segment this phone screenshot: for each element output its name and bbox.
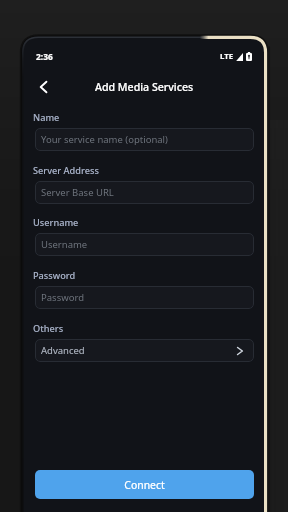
button[interactable]: Advanced	[35, 339, 254, 362]
staticText: 2:36	[36, 51, 53, 62]
button[interactable]: Password	[35, 286, 254, 309]
button[interactable]: Connect	[35, 470, 254, 499]
staticText: Connect	[124, 478, 165, 492]
button[interactable]: Username	[35, 233, 254, 256]
staticText: Username	[33, 216, 79, 229]
staticText: LTE	[220, 51, 234, 62]
staticText: Add Media Services	[95, 80, 194, 94]
staticText: Your service name (optional)	[41, 133, 168, 146]
button[interactable]: Server Base URL	[35, 181, 254, 204]
staticText: Password	[41, 291, 84, 304]
button[interactable]: Back	[32, 76, 54, 98]
staticText: Name	[33, 111, 60, 124]
staticText: Server Address	[33, 164, 99, 177]
button[interactable]: Your service name (optional)	[35, 128, 254, 151]
staticText: Server Base URL	[41, 186, 114, 199]
staticText: Advanced	[41, 344, 85, 357]
staticText: Username	[41, 238, 88, 251]
staticText: Password	[33, 269, 76, 282]
staticText: Others	[33, 322, 64, 335]
